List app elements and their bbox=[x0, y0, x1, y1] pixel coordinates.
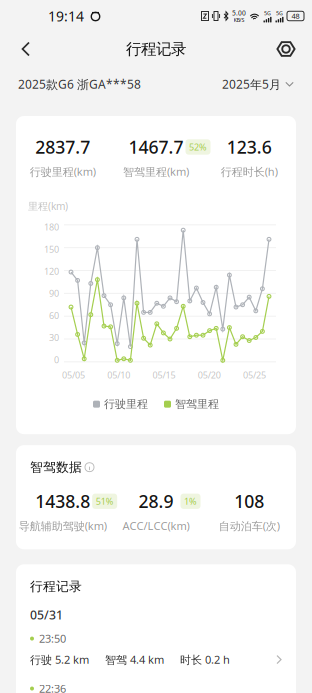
staticText: 5G bbox=[264, 10, 271, 17]
staticText: 行驶 5.2 km bbox=[30, 652, 89, 667]
staticText: 1% bbox=[184, 495, 197, 507]
staticText: 智驾里程 bbox=[175, 397, 219, 411]
staticText: 120 bbox=[44, 265, 59, 277]
staticText: 90 bbox=[49, 287, 59, 299]
staticText: 05/20 bbox=[198, 369, 221, 381]
staticText: 19:14 bbox=[48, 6, 84, 26]
staticText: 时长 0.2 h bbox=[180, 652, 230, 667]
staticText: 行驶里程 bbox=[104, 397, 148, 411]
staticText: 150 bbox=[44, 243, 59, 255]
staticText: 行程时长(h) bbox=[221, 164, 278, 179]
staticText: 30 bbox=[49, 331, 59, 344]
staticText: 28.9 bbox=[138, 489, 173, 513]
staticText: 行程记录 bbox=[126, 39, 186, 59]
button[interactable]: Settings bbox=[266, 30, 306, 68]
staticText: 108 bbox=[234, 489, 264, 513]
staticText: 05/15 bbox=[152, 369, 175, 381]
button[interactable]: Back bbox=[6, 30, 46, 68]
staticText: 48 bbox=[291, 11, 299, 21]
staticText: 2025款G6 浙GA***58 bbox=[18, 76, 141, 92]
staticText: 1438.8 bbox=[35, 489, 90, 513]
staticText: 导航辅助驾驶(km) bbox=[19, 518, 107, 533]
staticText: 5G bbox=[276, 10, 283, 17]
staticText: KB/S bbox=[233, 16, 244, 24]
staticText: 52% bbox=[189, 141, 207, 153]
staticText: 0 bbox=[54, 353, 59, 366]
staticText: 1467.7 bbox=[128, 135, 183, 159]
staticText: 智驾里程(km) bbox=[123, 164, 189, 179]
staticText: 2025年5月 bbox=[222, 76, 281, 92]
staticText: 行驶里程(km) bbox=[30, 164, 96, 179]
staticText: 2837.7 bbox=[35, 135, 90, 159]
staticText: 23:50 bbox=[39, 631, 66, 646]
staticText: ACC/LCC(km) bbox=[122, 518, 189, 533]
staticText: 自动泊车(次) bbox=[219, 518, 280, 533]
button[interactable]: 23:50 bbox=[16, 623, 296, 673]
staticText: 123.6 bbox=[227, 135, 272, 159]
staticText: 05/25 bbox=[243, 369, 266, 381]
staticText: 5.00 bbox=[232, 8, 246, 17]
staticText: 51% bbox=[96, 495, 114, 507]
staticText: 里程(km) bbox=[28, 199, 68, 213]
staticText: 智驾数据 bbox=[30, 459, 82, 475]
staticText: 60 bbox=[49, 309, 59, 322]
staticText: 180 bbox=[44, 221, 59, 233]
staticText: 22:36 bbox=[39, 681, 66, 693]
button[interactable]: 2025年5月 bbox=[222, 76, 294, 92]
staticText: 05/31 bbox=[30, 606, 63, 623]
staticText: 05/05 bbox=[62, 369, 85, 381]
staticText: 05/10 bbox=[107, 369, 130, 381]
staticText: 智驾 4.4 km bbox=[105, 652, 164, 667]
staticText: 行程记录 bbox=[30, 578, 82, 594]
